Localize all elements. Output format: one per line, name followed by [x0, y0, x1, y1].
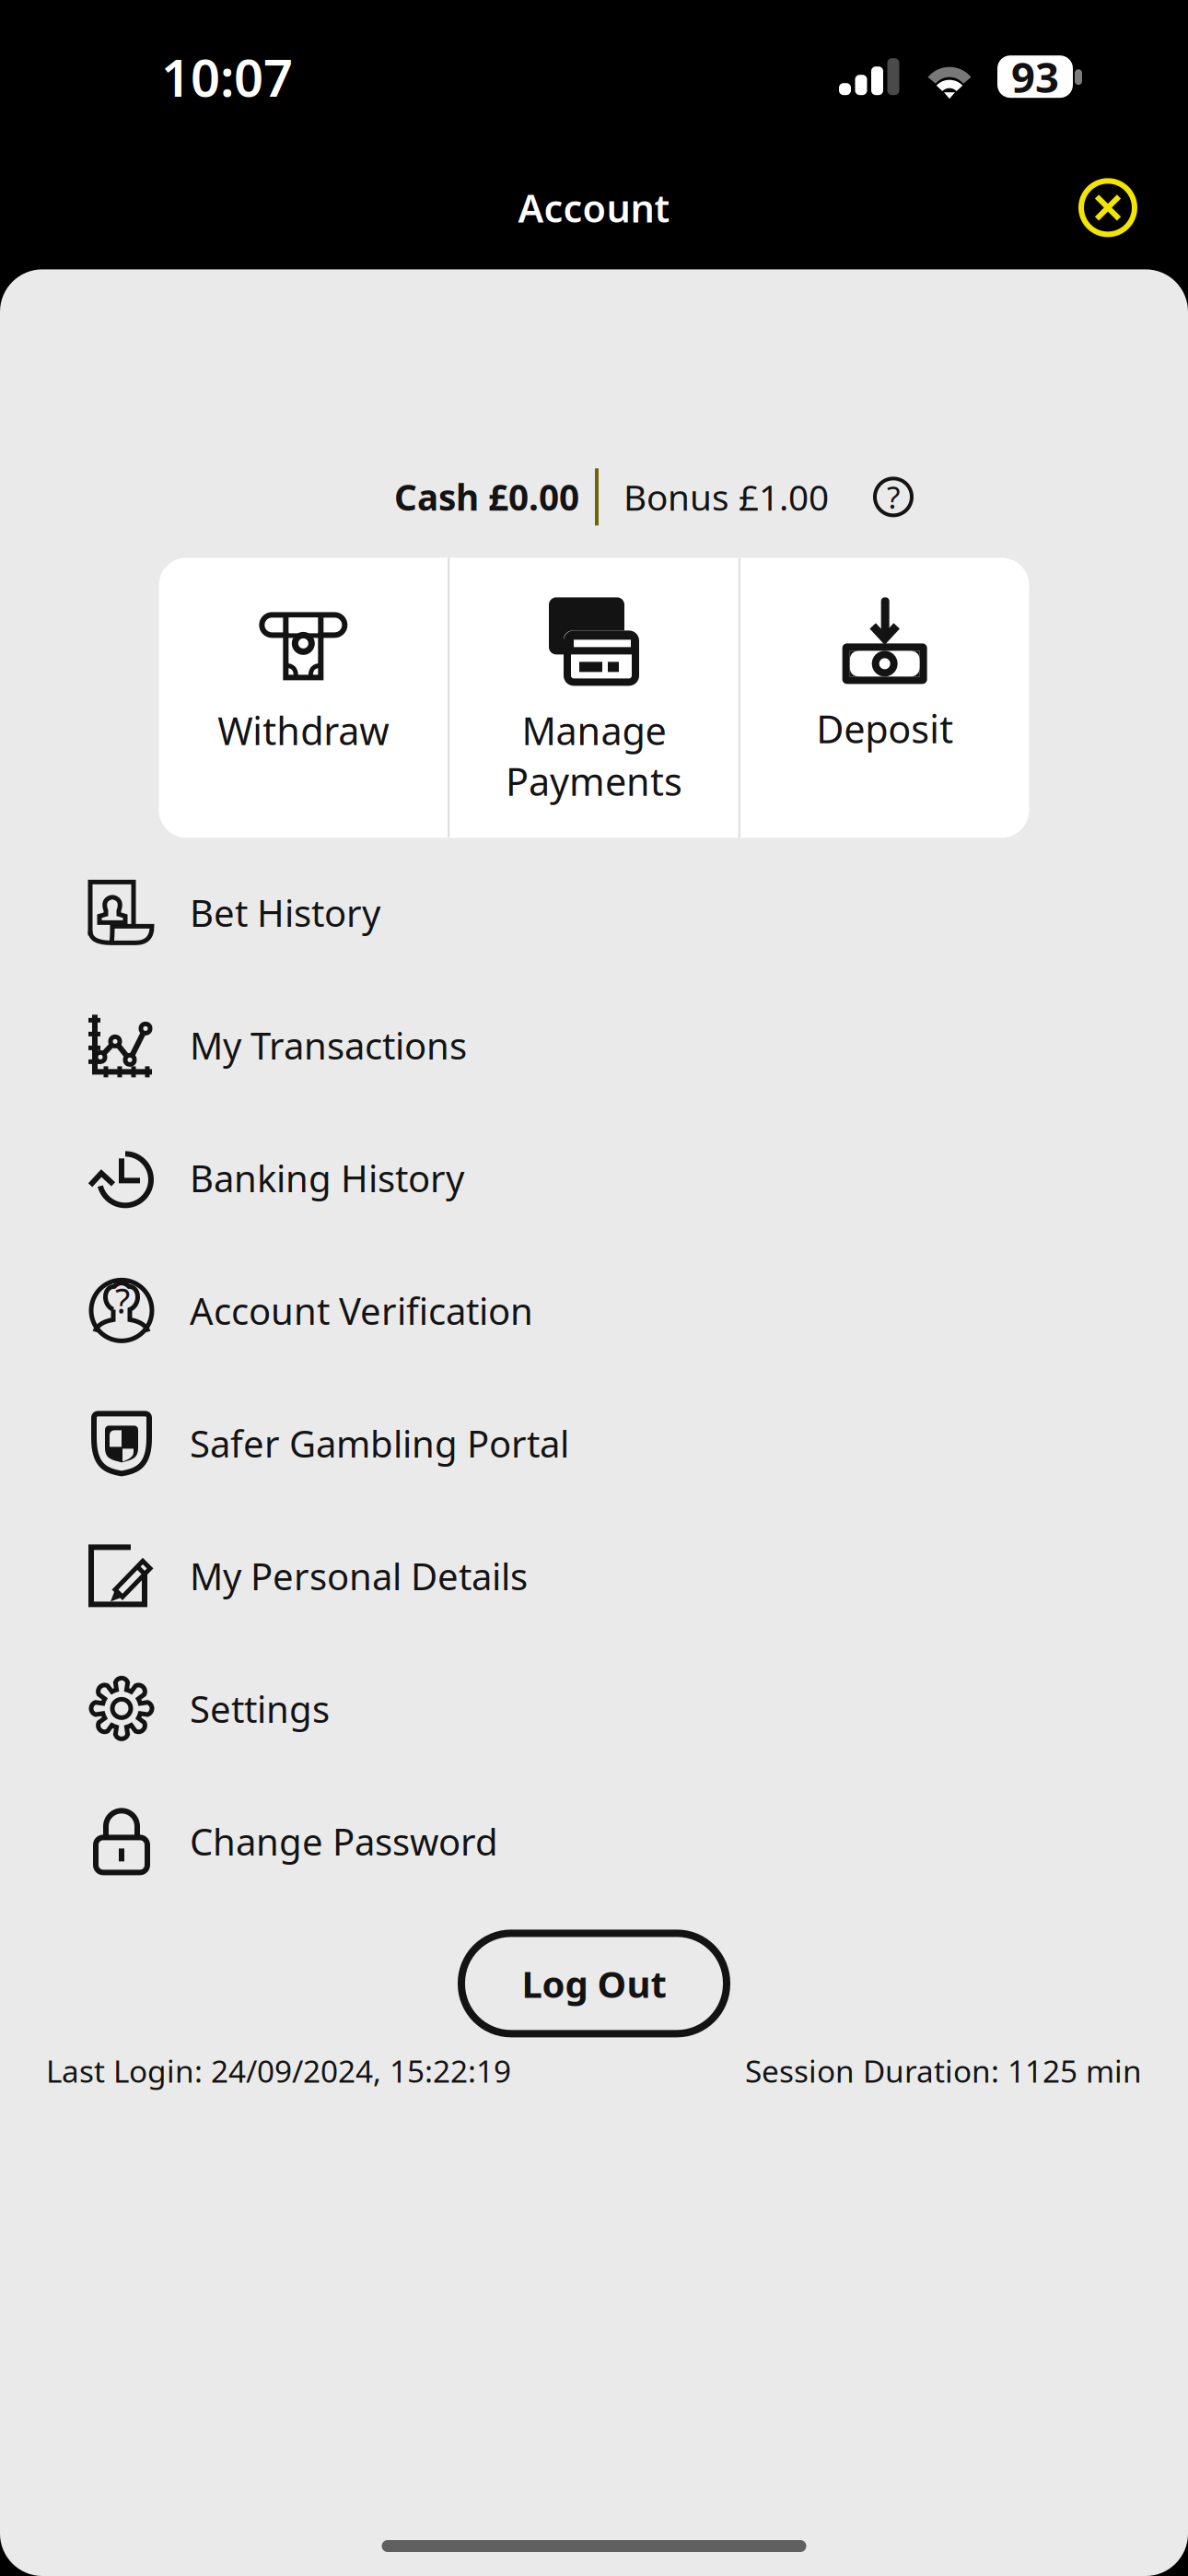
staticText: ? [115, 1277, 130, 1323]
staticText: Settings [190, 1684, 330, 1733]
button[interactable]: Log Out [458, 1930, 730, 2037]
button[interactable]: Bet History [0, 846, 1188, 979]
button[interactable]: Balance information [862, 466, 925, 528]
staticText: Bonus £1.00 [623, 473, 829, 521]
staticText: Manage [522, 705, 666, 756]
staticText: Banking History [190, 1153, 464, 1202]
staticText: Last Login: 24/09/2024, 15:22:19 [46, 2050, 511, 2091]
staticText: Bet History [190, 888, 380, 937]
button[interactable]: Manage [450, 558, 738, 838]
staticText: Session Duration: 1125 min [745, 2050, 1142, 2091]
staticText: Safer Gambling Portal [190, 1419, 569, 1468]
button[interactable]: Change Password [0, 1775, 1188, 1907]
staticText: Account Verification [190, 1286, 533, 1335]
staticText: Withdraw [218, 705, 389, 756]
button[interactable]: Settings [0, 1642, 1188, 1775]
button[interactable]: My Transactions [0, 979, 1188, 1111]
staticText: My Personal Details [190, 1551, 528, 1600]
staticText: ? [887, 477, 900, 517]
staticText: 93 [1011, 49, 1059, 104]
button[interactable]: Banking History [0, 1111, 1188, 1244]
button[interactable]: ? [0, 1244, 1188, 1377]
staticText: 10:07 [161, 42, 293, 111]
staticText: Log Out [522, 1959, 666, 2008]
button[interactable]: Withdraw [159, 558, 448, 838]
staticText: Cash £0.00 [394, 473, 579, 521]
staticText: Deposit [816, 703, 953, 754]
staticText: Account [518, 182, 670, 233]
staticText: Change Password [190, 1817, 498, 1866]
button[interactable]: Close [1064, 163, 1152, 252]
button[interactable]: My Personal Details [0, 1509, 1188, 1642]
staticText: My Transactions [190, 1021, 467, 1070]
button[interactable]: Deposit [740, 558, 1029, 838]
button[interactable]: Safer Gambling Portal [0, 1377, 1188, 1509]
staticText: Payments [506, 756, 682, 806]
